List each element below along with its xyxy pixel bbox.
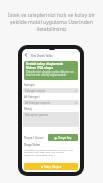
staticText: Talep Oluştur: [44, 165, 62, 169]
button[interactable]: Alt Kategori seçiniz: [23, 100, 79, 105]
staticText: Mesajınızı yazınız: [25, 113, 49, 117]
staticText: Kategori: [24, 83, 36, 87]
staticText: İstek ve taleplerinizi hızlı ve kolay bi…: [0, 12, 103, 33]
staticText: Dosya / Görsel: [24, 136, 44, 140]
button[interactable]: Back: [22, 49, 30, 61]
staticText: Alt Kategori seçiniz: [25, 101, 50, 105]
button[interactable]: Talep Oluştur: [24, 163, 78, 170]
staticText: Kategori seçiniz: [25, 89, 46, 93]
staticText: Mesaj: [24, 107, 32, 111]
staticText: Yeni Destek Talebi: [31, 54, 53, 57]
button[interactable]: Mesajınızı yazınız: [23, 112, 79, 127]
staticText: Dosya Türleri: [24, 143, 41, 147]
staticText: Taleplerinizi ulaştığı andan itibaren en…: [26, 70, 74, 77]
staticText: Yüklemek istediğiniz dosyalar en fazla 5…: [24, 148, 73, 157]
staticText: Alt Kategori: [24, 95, 40, 99]
staticText: Destek talep oluşturarak Bizlere 7/24 ul…: [26, 62, 64, 69]
button[interactable]: Kategori seçiniz: [23, 88, 79, 93]
button[interactable]: Back: [22, 49, 80, 61]
button[interactable]: Dosya Seç: [48, 134, 78, 141]
staticText: Dosya Seç: [58, 136, 72, 140]
